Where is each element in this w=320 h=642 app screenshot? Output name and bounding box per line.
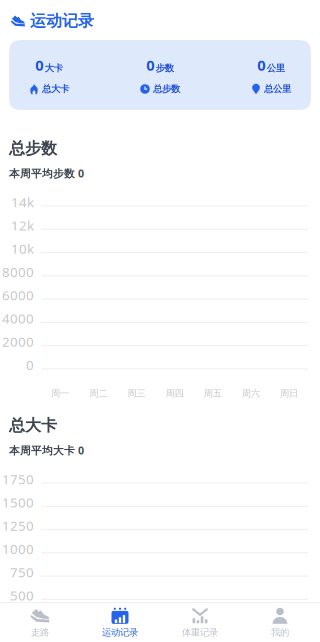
staticText: 体重记录 [182, 627, 218, 638]
staticText: 周日 [280, 388, 298, 399]
staticText: 总步数 [9, 138, 57, 158]
button[interactable]: 运动记录 [80, 603, 160, 642]
staticText: 750 [10, 563, 34, 581]
staticText: 2000 [2, 333, 34, 350]
staticText: 4000 [2, 309, 34, 327]
staticText: 运动记录 [30, 11, 94, 31]
staticText: 周四 [165, 388, 183, 399]
staticText: 本周平均大卡 0 [9, 443, 84, 457]
staticText: 公里 [267, 62, 285, 74]
staticText: 本周平均步数 0 [9, 166, 84, 180]
staticText: 我的 [271, 627, 289, 638]
staticText: 走路 [31, 627, 49, 638]
staticText: 周六 [242, 388, 260, 399]
staticText: 500 [10, 586, 34, 604]
staticText: 0 [26, 356, 34, 374]
staticText: 0 [35, 55, 43, 75]
button[interactable]: 我的 [240, 603, 320, 642]
staticText: 步数 [156, 62, 174, 74]
staticText: 6000 [2, 286, 34, 304]
staticText: 周五 [204, 388, 222, 399]
staticText: 1250 [2, 517, 34, 534]
staticText: 总大卡 [9, 415, 57, 435]
staticText: 周三 [127, 388, 145, 399]
staticText: 1000 [2, 540, 34, 558]
staticText: 总步数 [153, 83, 180, 95]
staticText: 1500 [2, 493, 34, 511]
staticText: 14k [11, 193, 34, 211]
staticText: 12k [11, 216, 34, 234]
staticText: 大卡 [45, 62, 63, 74]
staticText: 总大卡 [42, 83, 69, 95]
staticText: 1750 [2, 470, 34, 488]
staticText: 0 [257, 55, 265, 75]
staticText: 总公里 [264, 83, 291, 95]
staticText: 运动记录 [102, 627, 138, 638]
staticText: 周二 [89, 388, 107, 399]
button[interactable]: 走路 [0, 603, 80, 642]
button[interactable]: 体重记录 [160, 603, 240, 642]
staticText: 8000 [2, 263, 34, 281]
staticText: 0 [146, 55, 154, 75]
staticText: 周一 [51, 388, 69, 399]
staticText: 10k [11, 240, 34, 257]
